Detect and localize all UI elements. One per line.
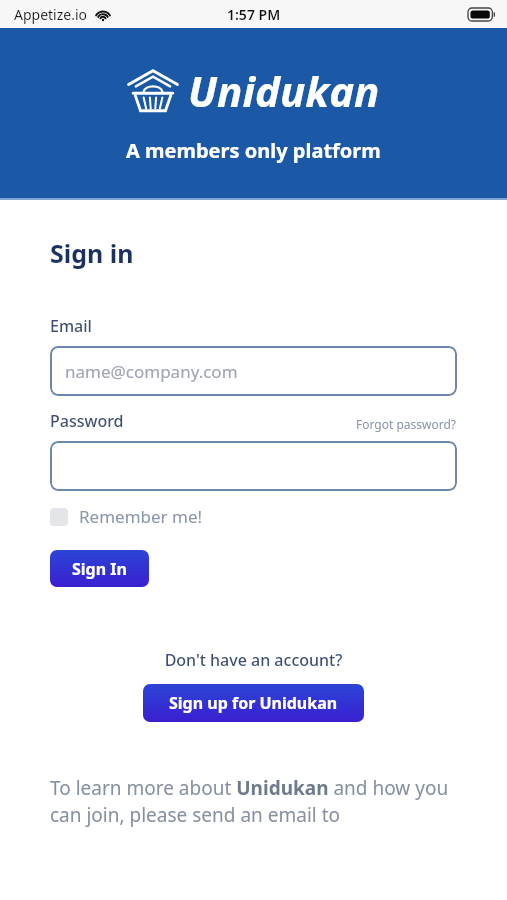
staticText: A members only platform	[126, 137, 381, 164]
staticText: Email	[50, 315, 92, 337]
staticText: To learn more about Unidukan and how you…	[50, 775, 457, 828]
staticText: name@company.com	[65, 360, 238, 383]
staticText: Appetize.io	[14, 5, 88, 24]
button[interactable]: Sign In	[50, 550, 149, 587]
staticText: Sign up for Unidukan	[169, 692, 338, 714]
button[interactable]: Sign up for Unidukan	[143, 684, 364, 722]
staticText: Forgot password?	[356, 416, 457, 432]
staticText: Unidukan	[188, 62, 380, 119]
staticText: Password	[50, 410, 124, 432]
staticText: Don't have an account?	[50, 649, 457, 671]
button[interactable]: Forgot password?	[356, 416, 457, 432]
button[interactable]	[50, 441, 457, 491]
staticText: 1:57 PM	[227, 5, 281, 24]
button[interactable]: Remember me!	[50, 505, 203, 528]
staticText: Sign In	[72, 558, 127, 580]
staticText: Sign in	[50, 236, 134, 270]
staticText: Remember me!	[79, 505, 203, 528]
button[interactable]: name@company.com	[50, 346, 457, 396]
